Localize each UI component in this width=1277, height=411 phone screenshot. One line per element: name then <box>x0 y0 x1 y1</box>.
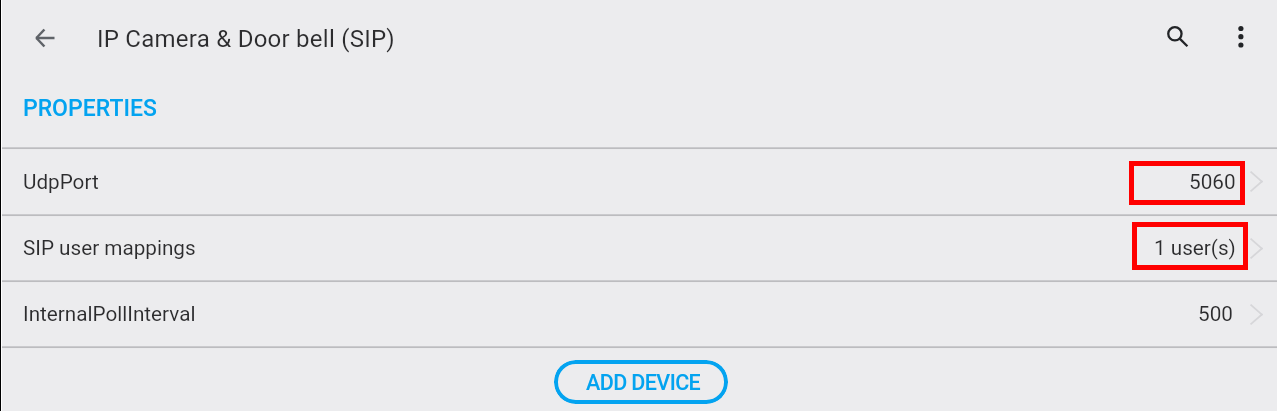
button[interactable]: UdpPort <box>0 148 1277 215</box>
button[interactable]: Navigate up <box>25 18 65 58</box>
button[interactable]: More options <box>1221 17 1261 57</box>
button[interactable]: SIP user mappings <box>0 215 1277 281</box>
staticText: PROPERTIES <box>23 95 157 122</box>
staticText: 5060 <box>1189 170 1236 194</box>
staticText: 1 user(s) <box>1154 236 1236 260</box>
staticText: 500 <box>1198 302 1233 326</box>
staticText: ADD DEVICE <box>586 370 701 395</box>
staticText: SIP user mappings <box>23 236 196 260</box>
button[interactable]: ADD DEVICE <box>554 360 728 404</box>
staticText: IP Camera & Door bell (SIP) <box>97 25 395 53</box>
staticText: UdpPort <box>23 170 99 194</box>
button[interactable]: Search <box>1155 14 1195 54</box>
staticText: InternalPollInterval <box>23 302 196 326</box>
button[interactable]: InternalPollInterval <box>0 281 1277 347</box>
